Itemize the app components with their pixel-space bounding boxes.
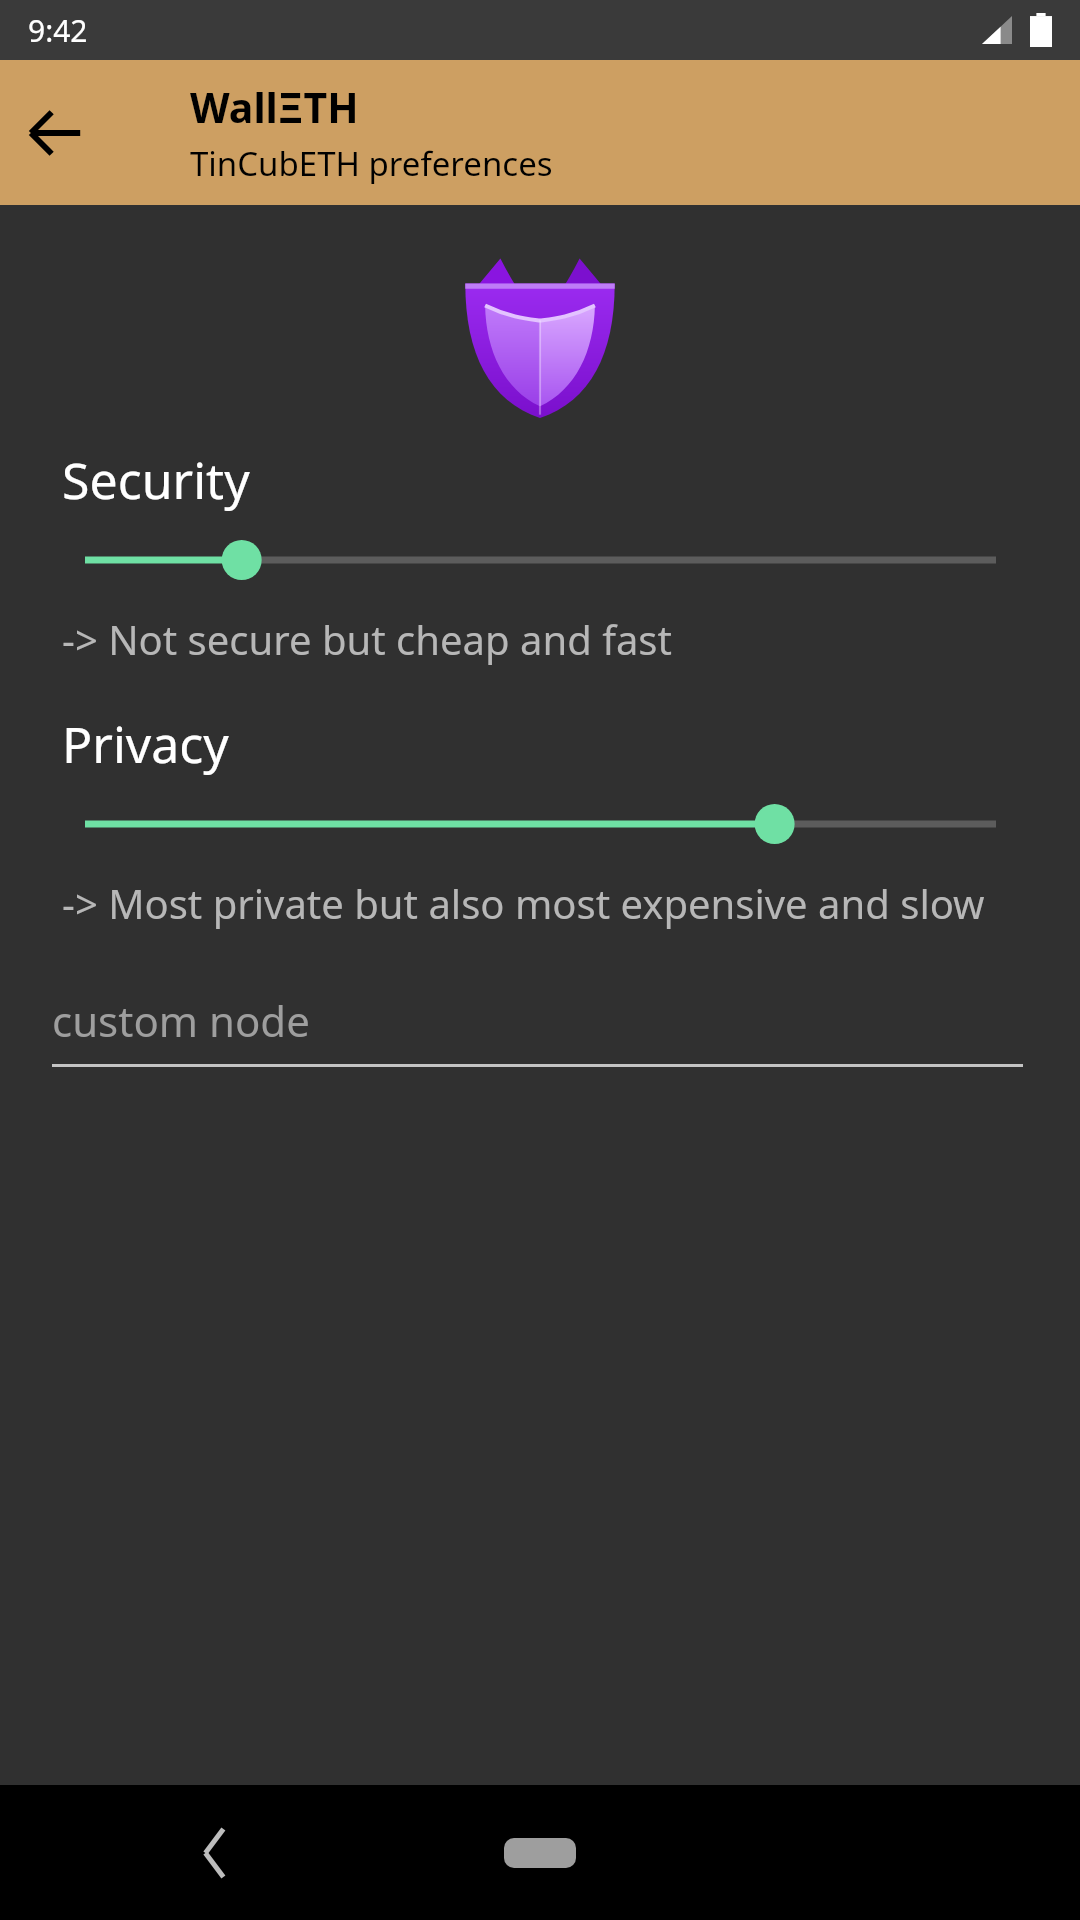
button[interactable]: Back [170,1808,260,1898]
button[interactable]: Home [480,1818,600,1888]
staticText: WallΞTH [190,79,359,135]
staticText: Security [62,446,250,514]
staticText: Privacy [62,710,229,778]
button[interactable]: Slider [0,802,1080,846]
button[interactable]: Slider [0,538,1080,582]
staticText: TinCubETH preferences [190,141,553,186]
staticText: -> Not secure but cheap and fast [62,612,672,666]
button[interactable]: Back [0,78,110,188]
staticText: custom node [52,992,310,1049]
staticText: -> Most private but also most expensive … [62,876,985,930]
staticText: 9:42 [28,10,88,51]
button[interactable]: custom node [52,982,1023,1092]
